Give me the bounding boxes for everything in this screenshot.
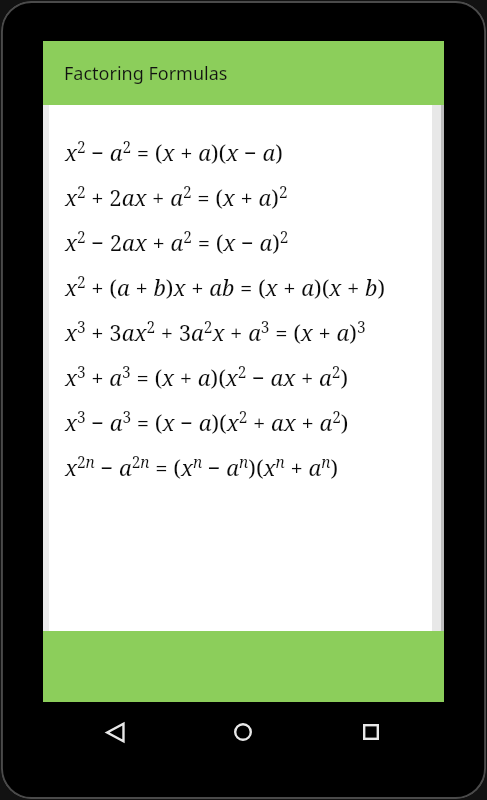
button[interactable]: Factoring Formulas [43, 41, 444, 105]
staticText: x2n − a2n = (xn − an)(xn + an) [65, 452, 339, 482]
staticText: x3 − a3 = (x − a)(x2 + ax + a2) [65, 407, 349, 437]
button[interactable]: x2 + 2ax + a2 = (x + a)2 [65, 174, 432, 219]
button[interactable]: x2 − 2ax + a2 = (x − a)2 [65, 219, 432, 264]
button[interactable]: x2 + (a + b)x + ab = (x + a)(x + b) [65, 264, 432, 309]
staticText: x2 − 2ax + a2 = (x − a)2 [65, 227, 289, 257]
button[interactable]: Back [95, 712, 135, 752]
staticText: Factoring Formulas [64, 61, 228, 86]
button[interactable]: x2 − a2 = (x + a)(x − a) [65, 129, 432, 174]
staticText: x3 + a3 = (x + a)(x2 − ax + a2) [65, 362, 348, 392]
button[interactable]: x3 + 3ax2 + 3a2x + a3 = (x + a)3 [65, 309, 432, 354]
staticText: x2 − a2 = (x + a)(x − a) [65, 137, 283, 167]
button[interactable]: Recent apps [351, 712, 391, 752]
button[interactable]: x3 + a3 = (x + a)(x2 − ax + a2) [65, 354, 432, 399]
staticText: x2 + 2ax + a2 = (x + a)2 [65, 182, 288, 212]
button[interactable]: x2n − a2n = (xn − an)(xn + an) [65, 444, 432, 489]
button[interactable]: x3 − a3 = (x − a)(x2 + ax + a2) [65, 399, 432, 444]
staticText: x3 + 3ax2 + 3a2x + a3 = (x + a)3 [65, 317, 366, 347]
staticText: x2 + (a + b)x + ab = (x + a)(x + b) [65, 272, 386, 302]
button[interactable]: Home [223, 712, 263, 752]
